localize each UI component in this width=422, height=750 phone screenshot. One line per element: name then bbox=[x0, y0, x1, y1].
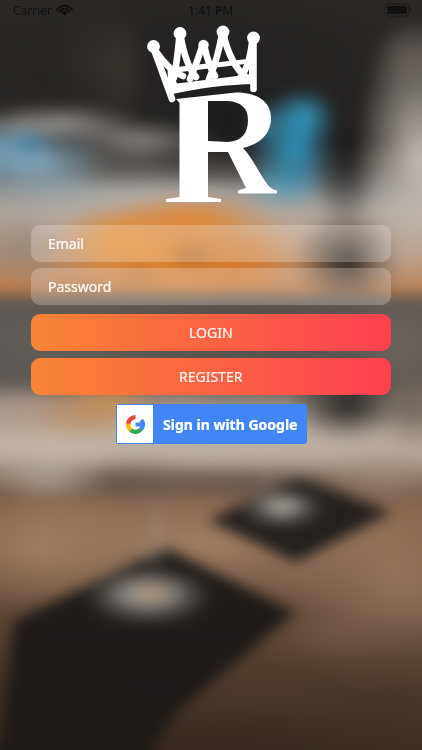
staticText: Password bbox=[48, 277, 112, 296]
button[interactable]: Password bbox=[31, 268, 391, 305]
staticText: REGISTER bbox=[179, 367, 243, 386]
staticText: Sign in with Google bbox=[163, 415, 298, 434]
button[interactable]: LOGIN bbox=[31, 314, 391, 351]
staticText: 1:41 PM bbox=[188, 2, 234, 18]
button[interactable]: REGISTER bbox=[31, 358, 391, 395]
button[interactable]: Email bbox=[31, 225, 391, 262]
staticText: LOGIN bbox=[189, 323, 233, 342]
staticText: Carrier bbox=[13, 2, 53, 18]
staticText: Email bbox=[48, 234, 84, 253]
button[interactable]: Sign in with Google bbox=[116, 404, 307, 444]
